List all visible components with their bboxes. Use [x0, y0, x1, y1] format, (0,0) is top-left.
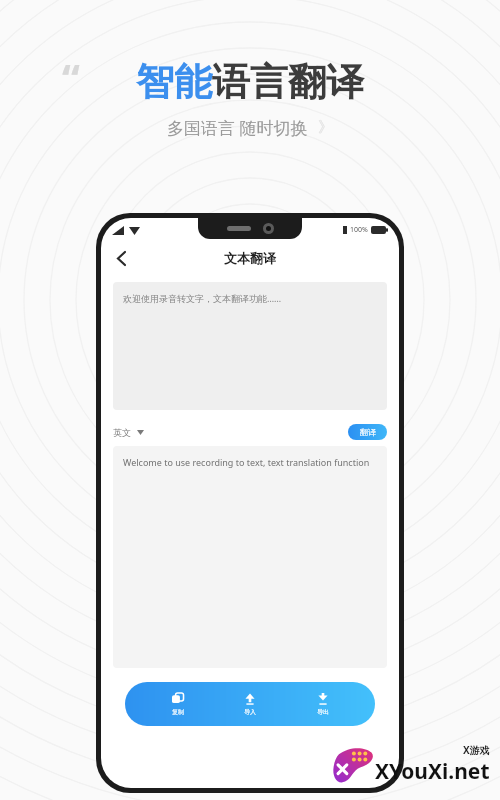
staticText: 英文	[113, 427, 131, 438]
staticText: 100%	[350, 225, 368, 235]
staticText: Welcome to use recording to text, text t…	[123, 456, 370, 468]
button[interactable]: 导出	[303, 689, 343, 720]
staticText: 翻译	[360, 427, 376, 437]
staticText: “	[62, 50, 80, 104]
button[interactable]: 翻译	[348, 424, 387, 440]
button[interactable]: Welcome to use recording to text, text t…	[113, 446, 387, 668]
button[interactable]: 复制	[158, 689, 198, 720]
staticText: 复制	[172, 708, 184, 716]
button[interactable]: 导入	[230, 689, 270, 720]
staticText: X游戏	[463, 743, 490, 757]
button[interactable]: Back	[109, 246, 133, 270]
staticText: XYouXi.net	[375, 757, 490, 786]
staticText: 欢迎使用录音转文字，文本翻译功能……	[123, 292, 282, 304]
staticText: 导入	[244, 708, 256, 716]
button[interactable]: 欢迎使用录音转文字，文本翻译功能……	[113, 282, 387, 410]
button[interactable]: 英文	[113, 424, 144, 441]
staticText: 语言翻译	[212, 58, 364, 106]
staticText: 多国语言 随时切换	[167, 116, 308, 139]
staticText: 文本翻译	[224, 250, 276, 266]
staticText: 》	[318, 118, 333, 137]
staticText: 导出	[317, 708, 329, 716]
staticText: 智能	[136, 58, 212, 106]
